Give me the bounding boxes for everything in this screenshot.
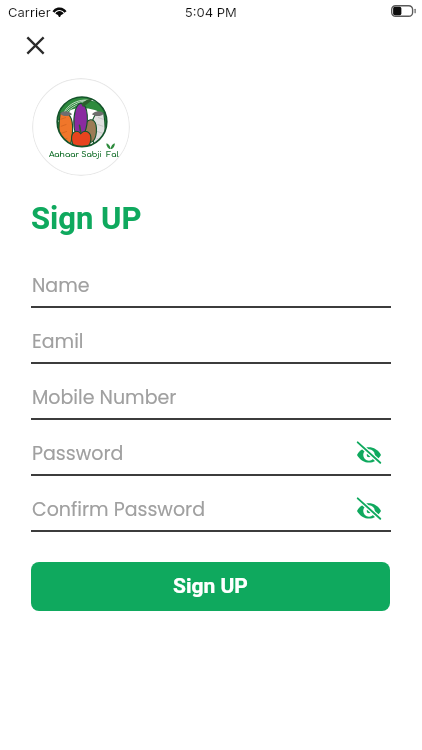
staticText: Carrier [8, 4, 51, 20]
button[interactable]: Password [31, 436, 391, 476]
button[interactable]: Show password [357, 441, 381, 463]
staticText: Eamil [32, 328, 84, 355]
button[interactable]: Confirm Password [31, 492, 391, 532]
button[interactable]: Close [13, 23, 58, 68]
staticText: Password [32, 440, 124, 467]
button[interactable]: Mobile Number [31, 380, 391, 420]
staticText: Name [32, 272, 90, 299]
button[interactable]: Eamil [31, 324, 391, 364]
button[interactable]: Name [31, 268, 391, 308]
staticText: Sign UP [173, 574, 248, 599]
staticText: Sign UP [31, 200, 142, 236]
staticText: Aahaar Sabji Fal [49, 150, 119, 159]
staticText: Confirm Password [32, 496, 205, 523]
button[interactable]: Show password [357, 497, 381, 519]
staticText: Aahaar Sabji Fal [49, 150, 119, 159]
staticText: Mobile Number [32, 384, 177, 411]
button[interactable]: Sign UP [31, 562, 390, 611]
staticText: 5:04 PM [185, 4, 237, 20]
